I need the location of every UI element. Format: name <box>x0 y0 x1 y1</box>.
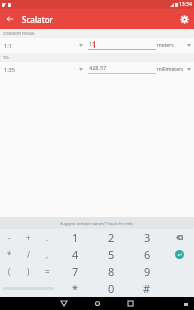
staticText: * <box>7 249 12 260</box>
staticText: # <box>143 281 151 296</box>
button[interactable]: Suggest contact names? Touch for info. <box>0 217 194 229</box>
button[interactable]: 9 <box>129 263 165 280</box>
staticText: 2 <box>108 230 115 245</box>
staticText: 5 <box>108 247 115 262</box>
button[interactable]: 1 <box>57 229 93 246</box>
button[interactable]: Recent apps <box>124 297 137 310</box>
staticText: + <box>26 232 31 243</box>
button[interactable]: * <box>0 246 19 263</box>
staticText: 1:1 <box>4 42 12 49</box>
staticText: 3 <box>144 230 151 245</box>
button[interactable]: Back <box>57 297 70 310</box>
button[interactable]: 1:1 <box>0 38 88 53</box>
button[interactable]: / <box>19 246 38 263</box>
button[interactable]: 2 <box>93 229 129 246</box>
button[interactable]: , <box>38 246 57 263</box>
button[interactable]: Settings <box>176 11 192 27</box>
staticText: millimeters <box>157 66 184 73</box>
button[interactable]: * <box>57 280 93 297</box>
staticText: / <box>27 249 30 260</box>
staticText: , <box>46 249 49 260</box>
button[interactable]: Enter <box>165 246 194 263</box>
staticText: - <box>8 232 11 243</box>
button[interactable]: 8 <box>93 263 129 280</box>
button[interactable]: Space <box>0 280 57 297</box>
staticText: CONVERT FROM: <box>3 31 35 36</box>
staticText: 428.57 <box>89 64 107 71</box>
button[interactable]: 6 <box>129 246 165 263</box>
staticText: 13:34 <box>179 1 192 8</box>
button[interactable]: 3 <box>129 229 165 246</box>
button[interactable]: Navigate up <box>2 11 18 27</box>
button[interactable]: 428.57 <box>88 62 156 77</box>
staticText: ) <box>27 266 30 277</box>
staticText: ( <box>8 266 11 277</box>
button[interactable]: 0 <box>93 280 129 297</box>
button[interactable]: millimeters <box>156 62 194 77</box>
button[interactable]: meters <box>156 38 194 53</box>
button[interactable]: # <box>129 280 165 297</box>
staticText: . <box>46 232 49 243</box>
button[interactable]: 1:35 <box>0 62 88 77</box>
staticText: 8 <box>108 264 115 279</box>
staticText: * <box>72 281 79 296</box>
button[interactable]: ) <box>19 263 38 280</box>
staticText: Scalator <box>22 14 53 25</box>
staticText: 7 <box>72 264 79 279</box>
button[interactable]: 5 <box>93 246 129 263</box>
staticText: 9 <box>144 264 151 279</box>
button[interactable]: 4 <box>57 246 93 263</box>
staticText: TO: <box>3 55 10 60</box>
staticText: 6 <box>144 247 151 262</box>
staticText: 1 <box>72 230 79 245</box>
staticText: 15 <box>89 40 96 47</box>
button[interactable]: Hide keyboard <box>181 299 191 309</box>
button[interactable]: 15 <box>88 38 156 53</box>
button[interactable]: . <box>38 229 57 246</box>
staticText: 1:35 <box>4 66 15 73</box>
staticText: 0 <box>108 281 115 296</box>
button[interactable]: ( <box>0 263 19 280</box>
button[interactable]: = <box>38 263 57 280</box>
button[interactable]: Backspace <box>165 229 194 246</box>
staticText: = <box>45 266 50 277</box>
button[interactable]: - <box>0 229 19 246</box>
staticText: Suggest contact names? Touch for info. <box>60 221 134 226</box>
button[interactable]: + <box>19 229 38 246</box>
staticText: 4 <box>72 247 79 262</box>
button[interactable]: 7 <box>57 263 93 280</box>
button[interactable]: Home <box>91 297 104 310</box>
staticText: meters <box>157 42 174 49</box>
